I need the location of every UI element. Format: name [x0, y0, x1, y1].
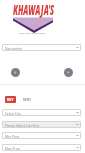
staticText: Max Price	[5, 146, 21, 150]
staticText: Select City	[5, 111, 21, 115]
button[interactable]: RENT	[23, 97, 32, 102]
staticText: RENT	[23, 98, 32, 102]
staticText: Navigation	[5, 46, 22, 50]
staticText: KHAWAJA'S	[13, 0, 54, 19]
staticText: Please Select City First	[5, 123, 40, 127]
staticText: Min Price	[5, 134, 20, 138]
button[interactable]: Navigation	[2, 44, 81, 51]
button[interactable]: Min Price	[2, 132, 81, 139]
button[interactable]: Please Select City First	[2, 121, 81, 128]
button[interactable]: Max Price	[2, 144, 81, 151]
button[interactable]: BUY	[5, 96, 16, 103]
staticText: REAL ESTATE ADVISORS	[19, 31, 46, 34]
button[interactable]: Select City	[2, 109, 81, 116]
staticText: BUY	[7, 98, 14, 102]
button[interactable]: Previous	[11, 68, 20, 77]
button[interactable]: Next	[64, 68, 73, 77]
